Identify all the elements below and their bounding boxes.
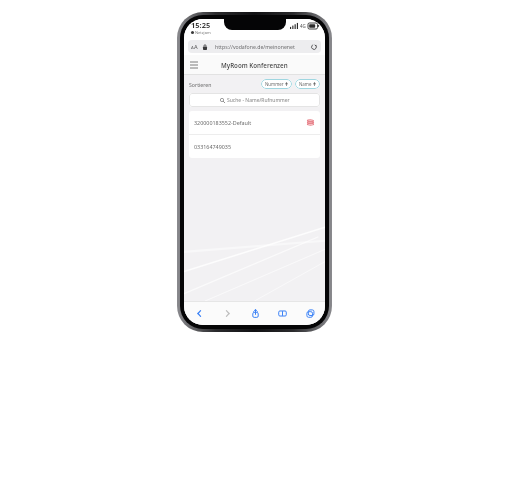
button[interactable]: Nummer [261,79,292,89]
button[interactable]: Bookmarks [274,303,290,323]
button[interactable]: Text size [191,43,198,51]
staticText: 033164749035 [194,143,232,150]
staticText: 15:25 [191,20,211,30]
other: Secure connection [203,44,207,50]
button[interactable]: Share [247,303,263,323]
button[interactable]: 033164749035 [189,135,320,158]
staticText: Name [299,81,312,87]
staticText: Sortieren [189,81,212,88]
button[interactable]: Back [191,303,207,323]
button[interactable]: https://vodafone.de/meinonenet [188,40,321,53]
staticText: 4G [300,23,306,29]
button[interactable]: Menu [187,58,201,72]
button[interactable]: Konferenz Einstellungen [306,118,315,127]
staticText: Netzjam [195,30,211,35]
staticText: MyRoom Konferenzen [221,61,288,69]
button[interactable]: Name [295,79,320,89]
other: Reload [311,44,317,50]
staticText: A [194,43,198,51]
button[interactable]: Suche - Name/Rufnummer [189,93,320,107]
staticText: A [191,45,194,51]
staticText: Nummer [265,81,284,87]
button[interactable]: Forward [219,303,235,323]
button[interactable]: 320000183552-Default [189,111,320,134]
staticText: https://vodafone.de/meinonenet [215,43,295,50]
staticText: Suche - Name/Rufnummer [227,97,290,104]
staticText: 320000183552-Default [194,119,252,126]
button[interactable]: Tabs [302,303,318,323]
